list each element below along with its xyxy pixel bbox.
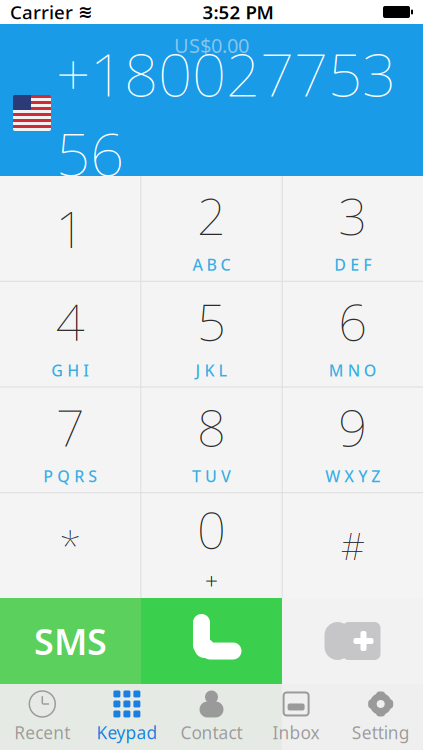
staticText: 6 — [338, 287, 367, 355]
staticText: 5 — [197, 287, 226, 355]
button[interactable]: Recent — [0, 684, 85, 750]
staticText: 1 — [56, 195, 85, 262]
button[interactable]: Contact — [169, 684, 254, 750]
staticText: G H I — [51, 360, 89, 381]
button[interactable]: Keypad — [85, 684, 169, 750]
staticText: T U V — [192, 465, 231, 487]
staticText: M N O — [329, 360, 377, 381]
staticText: ≋ — [78, 2, 93, 22]
button[interactable]: 4 — [0, 282, 140, 387]
button[interactable]: * — [0, 493, 140, 598]
staticText: Recent — [14, 721, 70, 744]
staticText: D E F — [334, 254, 371, 275]
staticText: * — [59, 519, 81, 572]
button[interactable]: Setting — [338, 684, 423, 750]
staticText: Inbox — [273, 721, 320, 744]
staticText: 7 — [56, 393, 85, 460]
staticText: P Q R S — [43, 465, 97, 487]
button[interactable]: 5 — [141, 282, 282, 387]
staticText: J K L — [195, 360, 227, 381]
staticText: + — [205, 566, 218, 596]
button[interactable]: # — [283, 493, 423, 598]
button[interactable]: 3 — [283, 176, 423, 281]
button[interactable]: Call — [141, 598, 282, 684]
button[interactable]: Inbox — [254, 684, 338, 750]
staticText: A B C — [192, 254, 230, 275]
staticText: 8 — [197, 393, 226, 460]
staticText: 9 — [338, 393, 367, 460]
button[interactable]: 1 — [0, 176, 140, 281]
button[interactable]: 2 — [141, 176, 282, 281]
button[interactable]: 6 — [283, 282, 423, 387]
staticText: Carrier — [10, 0, 73, 24]
staticText: 0 — [197, 495, 226, 563]
staticText: +18002775356 — [56, 33, 396, 193]
staticText: Keypad — [96, 721, 157, 744]
staticText: SMS — [34, 617, 107, 665]
staticText: 3 — [338, 182, 367, 249]
staticText: 3:52 PM — [202, 0, 273, 24]
staticText: Contact — [180, 721, 242, 744]
staticText: W X Y Z — [325, 465, 380, 487]
button[interactable]: 0 — [141, 493, 282, 598]
button[interactable]: 9 — [283, 387, 423, 492]
button[interactable]: 8 — [141, 387, 282, 492]
button[interactable]: 7 — [0, 387, 140, 492]
staticText: 4 — [56, 287, 85, 355]
staticText: Setting — [352, 721, 410, 744]
button[interactable]: SMS — [0, 598, 141, 684]
staticText: # — [341, 521, 365, 570]
staticText: 2 — [197, 182, 226, 249]
button[interactable]: Delete — [282, 598, 423, 684]
staticText: US$0.00 — [174, 32, 249, 59]
